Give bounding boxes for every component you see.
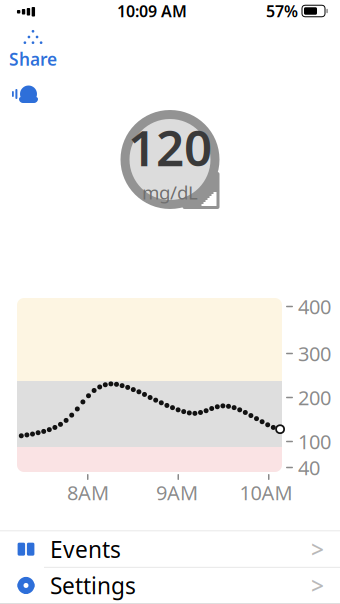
staticText: > xyxy=(311,570,324,600)
staticText: 300 xyxy=(298,340,331,367)
staticText: 120 xyxy=(128,114,212,180)
button[interactable]: Settings xyxy=(0,568,340,603)
staticText: Events xyxy=(50,534,121,564)
button[interactable]: Share xyxy=(6,32,60,68)
staticText: 40 xyxy=(298,454,320,481)
staticText: 10AM xyxy=(239,479,292,506)
button[interactable]: Events xyxy=(0,531,340,567)
staticText: 8AM xyxy=(67,479,109,506)
staticText: 400 xyxy=(298,293,331,320)
staticText: 200 xyxy=(298,384,331,411)
staticText: 100 xyxy=(298,428,331,455)
staticText: 10:09 AM xyxy=(117,0,187,22)
staticText: 9AM xyxy=(156,479,198,506)
button[interactable]: Alerts xyxy=(12,82,50,106)
staticText: Share xyxy=(9,47,57,70)
staticText: 57% xyxy=(266,0,298,22)
staticText: > xyxy=(311,534,324,564)
staticText: mg/dL xyxy=(142,180,198,205)
staticText: Settings xyxy=(50,570,136,600)
